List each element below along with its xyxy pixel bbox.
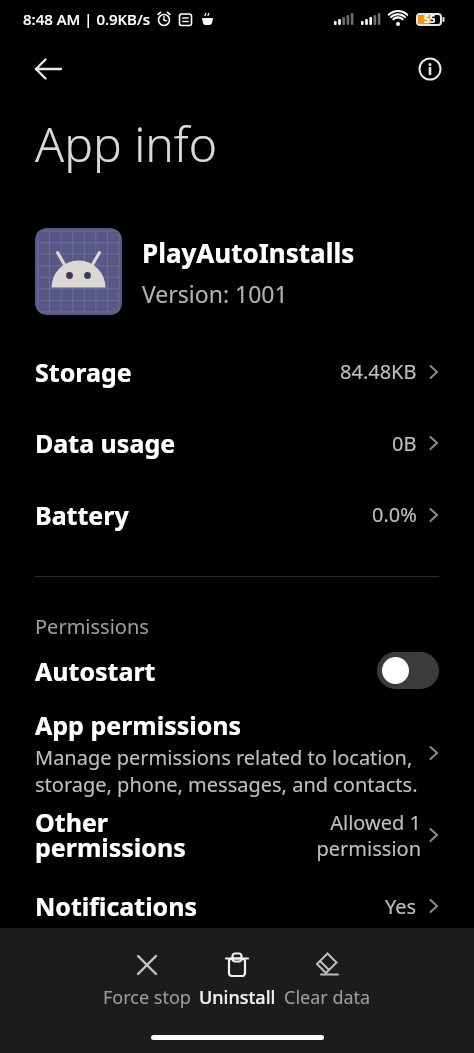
button[interactable]: [412, 51, 448, 87]
staticText: Yes: [385, 893, 417, 920]
button[interactable]: Uninstall: [192, 952, 282, 1010]
staticText: Manage permissions related to location, …: [35, 744, 418, 798]
staticText: Uninstall: [199, 985, 276, 1010]
button[interactable]: Notifications: [0, 876, 474, 936]
staticText: Other permissions: [35, 805, 186, 865]
button[interactable]: App permissions: [0, 708, 474, 798]
button[interactable]: Autostart: [0, 640, 474, 701]
staticText: Version: 1001: [142, 278, 288, 309]
button[interactable]: Data usage: [0, 407, 474, 479]
button[interactable]: Force stop: [102, 952, 192, 1010]
button[interactable]: Storage: [0, 336, 474, 407]
staticText: Notifications: [35, 889, 198, 923]
button[interactable]: Other permissions: [0, 805, 474, 865]
button[interactable]: [22, 49, 62, 89]
staticText: Clear data: [284, 985, 371, 1010]
staticText: App permissions: [35, 708, 242, 742]
staticText: 55: [424, 12, 436, 26]
staticText: 8:48 AM | 0.9KB/s: [23, 9, 150, 29]
staticText: Force stop: [103, 985, 191, 1010]
staticText: PlayAutoInstalls: [142, 235, 355, 270]
staticText: 0.0%: [372, 501, 417, 528]
staticText: Autostart: [35, 654, 156, 688]
staticText: Permissions: [35, 613, 149, 640]
button[interactable]: [377, 652, 439, 689]
staticText: Allowed 1 permission: [316, 809, 421, 862]
button[interactable]: Clear data: [282, 952, 372, 1010]
staticText: App info: [35, 111, 218, 176]
button[interactable]: Battery: [0, 479, 474, 550]
staticText: Storage: [35, 355, 132, 389]
staticText: Battery: [35, 498, 129, 532]
staticText: Data usage: [35, 426, 176, 460]
staticText: 84.48KB: [340, 358, 417, 385]
staticText: 0B: [392, 430, 417, 457]
